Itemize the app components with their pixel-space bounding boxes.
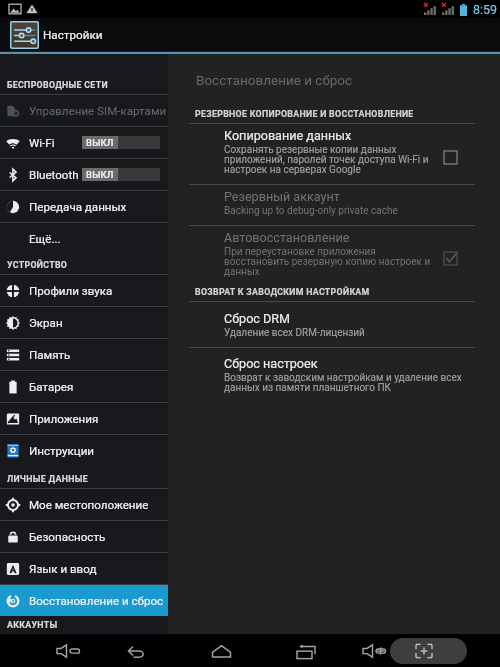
button[interactable]: Мое местоположение bbox=[0, 489, 168, 520]
button[interactable]: Язык и ввод bbox=[0, 553, 168, 584]
staticText: ЛИЧНЫЕ ДАННЫЕ bbox=[7, 474, 88, 484]
button[interactable]: Приложения bbox=[0, 403, 168, 434]
staticText: Восстановление и сброс bbox=[29, 594, 164, 608]
button[interactable]: Профили звука bbox=[0, 275, 168, 306]
button[interactable]: Wi-Fi bbox=[0, 127, 168, 158]
staticText: ВЫКЛ bbox=[86, 137, 114, 148]
staticText: Профили звука bbox=[29, 284, 113, 298]
staticText: ВОЗВРАТ К ЗАВОДСКИМ НАСТРОЙКАМ bbox=[195, 287, 370, 297]
staticText: УСТРОЙСТВО bbox=[7, 260, 68, 270]
staticText: Bluetooth bbox=[29, 168, 79, 182]
button[interactable]: Recent apps bbox=[284, 635, 336, 666]
staticText: ВЫКЛ bbox=[86, 169, 114, 180]
button[interactable]: Volume down bbox=[45, 635, 97, 666]
button[interactable]: Управление SIM-картами bbox=[0, 95, 168, 126]
button[interactable]: Сброс DRM bbox=[168, 307, 500, 347]
staticText: Восстановление и сброс bbox=[196, 72, 353, 88]
staticText: Управление SIM-картами bbox=[29, 104, 167, 118]
staticText: Удаление всех DRM-лицензий bbox=[224, 327, 365, 339]
staticText: Резервный аккаунт bbox=[224, 189, 340, 204]
staticText: БЕСПРОВОДНЫЕ СЕТИ bbox=[7, 80, 108, 90]
button[interactable]: Копирование данных bbox=[168, 124, 500, 184]
staticText: АККАУНТЫ bbox=[7, 620, 58, 630]
staticText: Инструкции bbox=[29, 444, 95, 458]
staticText: Сброс настроек bbox=[224, 356, 318, 371]
button[interactable]: Экран bbox=[0, 307, 168, 338]
button[interactable]: Передача данных bbox=[0, 191, 168, 222]
staticText: Автовосстановление bbox=[224, 230, 350, 245]
staticText: Wi-Fi bbox=[29, 136, 55, 150]
staticText: Копирование данных bbox=[224, 128, 352, 143]
button[interactable]: Автовосстановление bbox=[168, 225, 500, 286]
button[interactable]: Память bbox=[0, 339, 168, 370]
staticText: Язык и ввод bbox=[29, 562, 97, 576]
staticText: Батарея bbox=[29, 380, 74, 394]
staticText: РЕЗЕРВНОЕ КОПИРОВАНИЕ И ВОССТАНОВЛЕНИЕ bbox=[195, 109, 414, 119]
button[interactable]: Bluetooth bbox=[0, 159, 168, 190]
button[interactable]: Ещё... bbox=[0, 223, 168, 254]
button[interactable]: Back bbox=[115, 635, 167, 666]
staticText: При переустановке приложения восстановит… bbox=[224, 246, 436, 278]
staticText: Backing up to debug-only private cache bbox=[224, 205, 398, 217]
staticText: Память bbox=[29, 348, 71, 362]
button[interactable]: Батарея bbox=[0, 371, 168, 402]
staticText: Ещё... bbox=[29, 232, 61, 246]
button[interactable]: Восстановление и сброс bbox=[0, 585, 168, 616]
staticText: Возврат к заводским настройкам и удалени… bbox=[224, 372, 475, 394]
button[interactable]: Home bbox=[199, 635, 251, 666]
staticText: Сброс DRM bbox=[224, 311, 291, 326]
staticText: Безопасность bbox=[29, 530, 106, 544]
staticText: 8:59 bbox=[473, 2, 498, 17]
staticText: Мое местоположение bbox=[29, 498, 149, 512]
button[interactable]: Сброс настроек bbox=[168, 347, 500, 402]
button[interactable]: Volume up bbox=[351, 635, 403, 666]
staticText: Приложения bbox=[29, 412, 99, 426]
staticText: Передача данных bbox=[29, 200, 127, 214]
staticText: Экран bbox=[29, 316, 63, 330]
button[interactable]: Инструкции bbox=[0, 435, 168, 466]
staticText: Настройки bbox=[43, 28, 103, 42]
button[interactable]: Резервный аккаунт bbox=[168, 184, 500, 225]
staticText: Сохранять резервные копии данных приложе… bbox=[224, 144, 436, 176]
button[interactable]: Безопасность bbox=[0, 521, 168, 552]
button[interactable]: Screenshot bbox=[401, 635, 453, 666]
